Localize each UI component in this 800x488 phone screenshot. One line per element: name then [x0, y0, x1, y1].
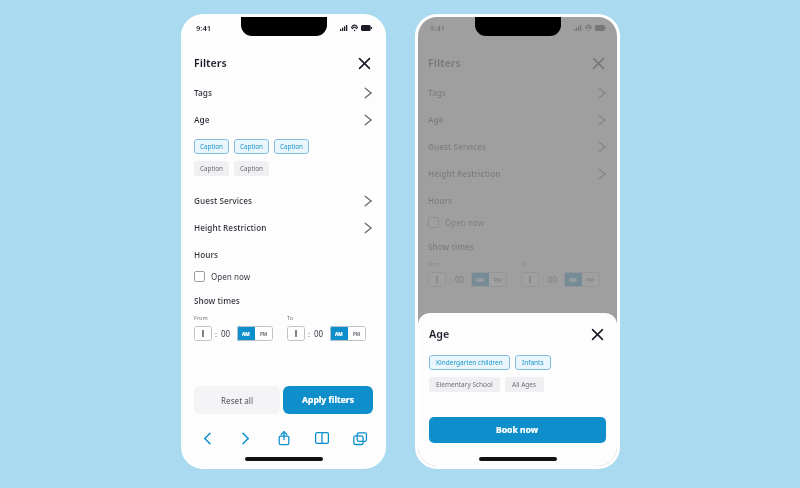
staticText: From — [194, 314, 208, 322]
staticText: Show times — [194, 295, 240, 306]
button[interactable] — [287, 326, 305, 341]
button[interactable]: Open now — [194, 266, 373, 286]
staticText: : — [449, 275, 452, 285]
staticText: 9:41 — [430, 23, 445, 33]
staticText: Open now — [445, 217, 485, 228]
button[interactable]: Caption — [194, 161, 229, 176]
button[interactable]: Back — [196, 427, 218, 449]
button[interactable] — [194, 326, 212, 341]
button[interactable]: Infants — [515, 355, 551, 370]
button[interactable]: Forward — [234, 427, 256, 449]
button[interactable]: Caption — [234, 161, 269, 176]
staticText: Caption — [200, 164, 223, 173]
staticText: 00 — [548, 274, 558, 285]
button[interactable]: PM — [348, 326, 366, 341]
button[interactable] — [428, 272, 446, 287]
staticText: Guest Services — [194, 195, 363, 206]
staticText: 00 — [314, 328, 324, 339]
button[interactable]: AM — [564, 272, 582, 287]
staticText: Caption — [240, 164, 263, 173]
staticText: Show times — [428, 241, 474, 252]
staticText: Caption — [280, 142, 303, 151]
staticText: : — [308, 329, 311, 339]
button[interactable] — [521, 272, 539, 287]
button[interactable]: Close — [588, 325, 606, 343]
staticText: Reset all — [221, 395, 254, 406]
button[interactable]: Tags — [428, 79, 607, 106]
button[interactable]: Filters — [194, 51, 373, 75]
button[interactable]: Share — [273, 427, 295, 449]
staticText: Age — [428, 114, 597, 125]
staticText: Hours — [194, 249, 219, 260]
staticText: AM — [569, 277, 577, 283]
staticText: : — [542, 275, 545, 285]
staticText: 9:41 — [196, 23, 211, 33]
staticText: Hours — [428, 195, 453, 206]
button[interactable]: Tags — [194, 79, 373, 106]
staticText: To — [521, 260, 528, 268]
staticText: 00 — [455, 274, 465, 285]
staticText: AM — [476, 277, 484, 283]
button[interactable]: Age — [428, 106, 607, 133]
staticText: Filters — [428, 56, 589, 70]
button[interactable]: Caption — [194, 139, 229, 154]
button[interactable]: PM — [582, 272, 600, 287]
staticText: Age — [194, 114, 363, 125]
button[interactable]: Age — [194, 106, 373, 133]
button[interactable]: Guest Services — [428, 133, 607, 160]
button[interactable]: Caption — [234, 139, 269, 154]
button[interactable]: PM — [255, 326, 273, 341]
button[interactable]: Apply filters — [283, 386, 373, 414]
staticText: Apply filters — [302, 394, 354, 406]
button[interactable]: Reset all — [194, 386, 280, 414]
staticText: PM — [353, 331, 361, 337]
button[interactable]: Filters — [428, 51, 607, 75]
staticText: To — [287, 314, 294, 322]
staticText: PM — [587, 277, 595, 283]
button[interactable]: Close — [589, 54, 607, 72]
staticText: Height Restriction — [428, 168, 597, 179]
staticText: : — [215, 329, 218, 339]
button[interactable]: Height Restriction — [428, 160, 607, 187]
button[interactable]: Height Restriction — [194, 214, 373, 241]
button[interactable]: Tabs — [349, 427, 371, 449]
button[interactable]: Close — [355, 54, 373, 72]
button[interactable]: PM — [489, 272, 507, 287]
staticText: Kindergarten children — [436, 358, 503, 367]
staticText: 00 — [221, 328, 231, 339]
button[interactable]: AM — [237, 326, 255, 341]
button[interactable]: AM — [471, 272, 489, 287]
staticText: All Ages — [512, 380, 537, 389]
staticText: Book now — [496, 424, 539, 436]
button[interactable]: All Ages — [505, 377, 544, 392]
staticText: PM — [260, 331, 268, 337]
staticText: Tags — [194, 87, 363, 98]
staticText: Filters — [194, 56, 355, 70]
staticText: From — [428, 260, 442, 268]
staticText: Elementary School — [436, 380, 493, 389]
button[interactable]: Open now — [428, 212, 607, 232]
button[interactable]: Bookmarks — [311, 427, 333, 449]
button[interactable]: AM — [330, 326, 348, 341]
button[interactable]: Elementary School — [429, 377, 500, 392]
button[interactable]: Age — [429, 324, 606, 344]
staticText: Infants — [522, 358, 544, 367]
staticText: AM — [335, 331, 343, 337]
button[interactable]: Kindergarten children — [429, 355, 510, 370]
button[interactable]: Book now — [429, 417, 606, 443]
staticText: Caption — [200, 142, 223, 151]
staticText: Guest Services — [428, 141, 597, 152]
staticText: Age — [429, 327, 588, 341]
staticText: Caption — [240, 142, 263, 151]
staticText: AM — [242, 331, 250, 337]
staticText: Height Restriction — [194, 222, 363, 233]
staticText: PM — [494, 277, 502, 283]
button[interactable]: Guest Services — [194, 187, 373, 214]
button[interactable]: Caption — [274, 139, 309, 154]
staticText: Open now — [211, 271, 251, 282]
staticText: Tags — [428, 87, 597, 98]
